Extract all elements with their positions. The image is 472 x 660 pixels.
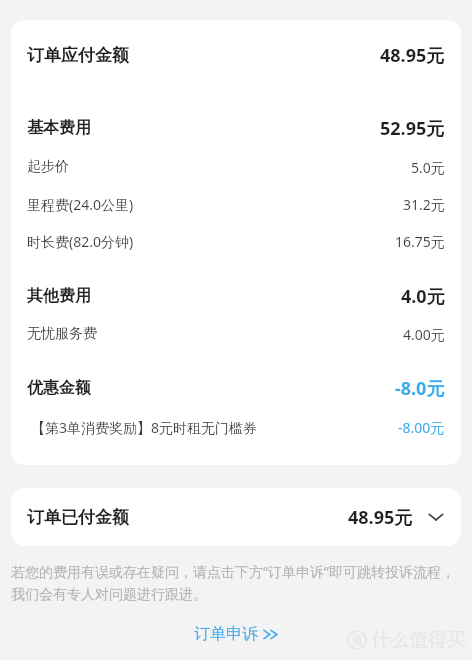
other: 展开 — [425, 506, 447, 528]
staticText: 52.95元 — [380, 116, 445, 141]
staticText: 其他费用 — [27, 286, 91, 306]
staticText: 起步价 — [27, 158, 69, 176]
button[interactable]: 订单申诉 — [178, 618, 295, 650]
staticText: 里程费(24.0公里) — [27, 195, 134, 214]
button[interactable]: 订单应付金额 — [11, 40, 461, 70]
staticText: 基本费用 — [27, 118, 91, 138]
staticText: 订单应付金额 — [27, 45, 129, 66]
staticText: 若您的费用有误或存在疑问，请点击下方“订单申诉”即可跳转投诉流程，我们会有专人对… — [11, 562, 461, 604]
staticText: 优惠金额 — [27, 378, 91, 398]
button[interactable]: 无忧服务费 — [11, 321, 461, 347]
staticText: 48.95元 — [380, 43, 445, 68]
staticText: 值 — [352, 633, 363, 647]
staticText: 4.0元 — [401, 284, 445, 309]
button[interactable]: 基本费用 — [11, 114, 461, 142]
staticText: 时长费(82.0分钟) — [27, 232, 134, 251]
staticText: 48.95元 — [348, 505, 413, 530]
staticText: -8.0元 — [395, 376, 445, 401]
staticText: 4.00元 — [403, 325, 445, 344]
staticText: 无忧服务费 — [27, 325, 97, 343]
button[interactable]: 时长费(82.0分钟) — [11, 228, 461, 254]
button[interactable]: 【第3单消费奖励】8元时租无门槛券 — [11, 414, 461, 440]
staticText: 【第3单消费奖励】8元时租无门槛券 — [31, 418, 258, 437]
button[interactable]: 其他费用 — [11, 282, 461, 310]
button[interactable]: 订单已付金额 — [11, 488, 461, 546]
staticText: 31.2元 — [403, 195, 445, 214]
button[interactable]: 优惠金额 — [11, 374, 461, 402]
staticText: 订单已付金额 — [27, 507, 129, 528]
staticText: 订单申诉 — [194, 624, 258, 644]
button[interactable]: 起步价 — [11, 154, 461, 180]
button[interactable]: 里程费(24.0公里) — [11, 191, 461, 217]
staticText: -8.00元 — [398, 418, 445, 437]
staticText: 什么值得买 — [371, 628, 466, 652]
staticText: 5.0元 — [411, 158, 445, 177]
staticText: 16.75元 — [395, 232, 445, 251]
